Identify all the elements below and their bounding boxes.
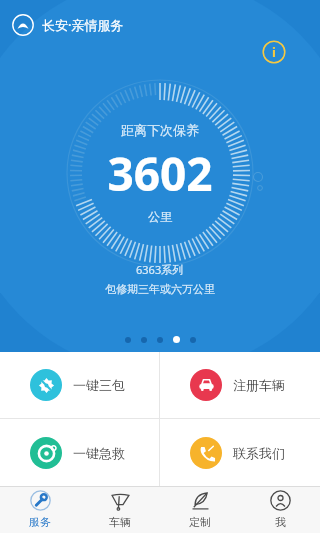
staticText: i [272,43,276,61]
staticText: 一键急救 [73,445,125,461]
button[interactable]: Information [262,40,286,64]
staticText: 一键三包 [73,377,125,393]
staticText: 包修期三年或六万公里 [105,282,215,296]
staticText: 公里 [148,209,172,224]
button[interactable]: 一键急救 [0,419,159,486]
button[interactable]: 联系我们 [160,419,320,486]
button[interactable]: 定制 [160,486,240,533]
button[interactable] [190,337,196,343]
staticText: 3602 [107,142,213,205]
staticText: 6363系列 [136,262,184,277]
button[interactable]: 长安·亲情服务 [12,14,124,36]
staticText: 注册车辆 [233,377,285,393]
staticText: 长安·亲情服务 [42,16,124,34]
button[interactable] [125,337,131,343]
button[interactable] [173,336,180,343]
button[interactable] [157,337,163,343]
staticText: 定制 [189,515,211,529]
staticText: 距离下次保养 [121,122,199,138]
staticText: 服务 [29,515,51,529]
staticText: 车辆 [109,515,131,529]
button[interactable]: 车辆 [80,486,160,533]
button[interactable]: 我 [240,486,320,533]
button[interactable]: 注册车辆 [160,352,320,418]
button[interactable] [141,337,147,343]
staticText: 联系我们 [233,445,285,461]
button[interactable]: 服务 [0,486,80,533]
staticText: 我 [275,515,286,529]
button[interactable]: 一键三包 [0,352,159,418]
